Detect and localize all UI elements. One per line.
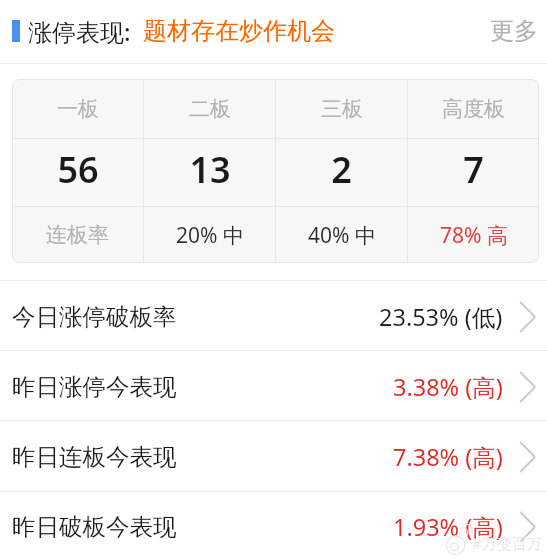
button[interactable]: 二板	[144, 79, 275, 138]
staticText: 二板	[189, 96, 231, 122]
staticText: 13	[189, 145, 231, 194]
staticText: 连板率	[46, 222, 109, 248]
staticText: 40% 中	[308, 221, 376, 250]
staticText: 昨日涨停今表现	[12, 372, 177, 402]
button[interactable]: 7	[408, 139, 539, 206]
button[interactable]: 20% 中	[144, 207, 275, 263]
button[interactable]: 更多	[490, 0, 538, 62]
staticText: 三板	[321, 96, 363, 122]
staticText: 7.38% (高)	[393, 441, 503, 473]
staticText: 更多	[490, 16, 538, 46]
button[interactable]: 昨日涨停今表现	[0, 350, 547, 420]
staticText: 今日涨停破板率	[12, 302, 177, 332]
staticText: 23.53% (低)	[379, 301, 503, 333]
button[interactable]: 40% 中	[276, 207, 407, 263]
staticText: 7	[463, 145, 484, 194]
staticText: 2	[331, 145, 352, 194]
button[interactable]: 今日涨停破板率	[0, 280, 547, 350]
staticText: 56	[57, 145, 99, 194]
button[interactable]: 一板	[12, 79, 143, 138]
button[interactable]: 昨日连板今表现	[0, 420, 547, 491]
staticText: 20% 中	[176, 221, 244, 250]
button[interactable]: 三板	[276, 79, 407, 138]
staticText: 昨日破板今表现	[12, 512, 177, 542]
button[interactable]: 连板率	[12, 207, 143, 263]
staticText: 一板	[57, 96, 99, 122]
staticText: 涨停表现:	[28, 15, 131, 48]
staticText: 3.38% (高)	[393, 371, 503, 403]
staticText: 题材存在炒作机会	[143, 16, 335, 46]
button[interactable]: 昨日破板今表现	[0, 491, 547, 559]
button[interactable]: 56	[12, 139, 143, 206]
staticText: 78% 高	[440, 221, 508, 250]
staticText: #万变百万	[472, 533, 542, 553]
staticText: 高度板	[442, 96, 505, 122]
button[interactable]: 78% 高	[408, 207, 539, 263]
button[interactable]: 13	[144, 139, 275, 206]
button[interactable]: 2	[276, 139, 407, 206]
other: Weibo watermark	[443, 529, 471, 557]
staticText: 昨日连板今表现	[12, 442, 177, 472]
button[interactable]: 高度板	[408, 79, 539, 138]
staticText: 1.93% (高)	[393, 511, 503, 543]
